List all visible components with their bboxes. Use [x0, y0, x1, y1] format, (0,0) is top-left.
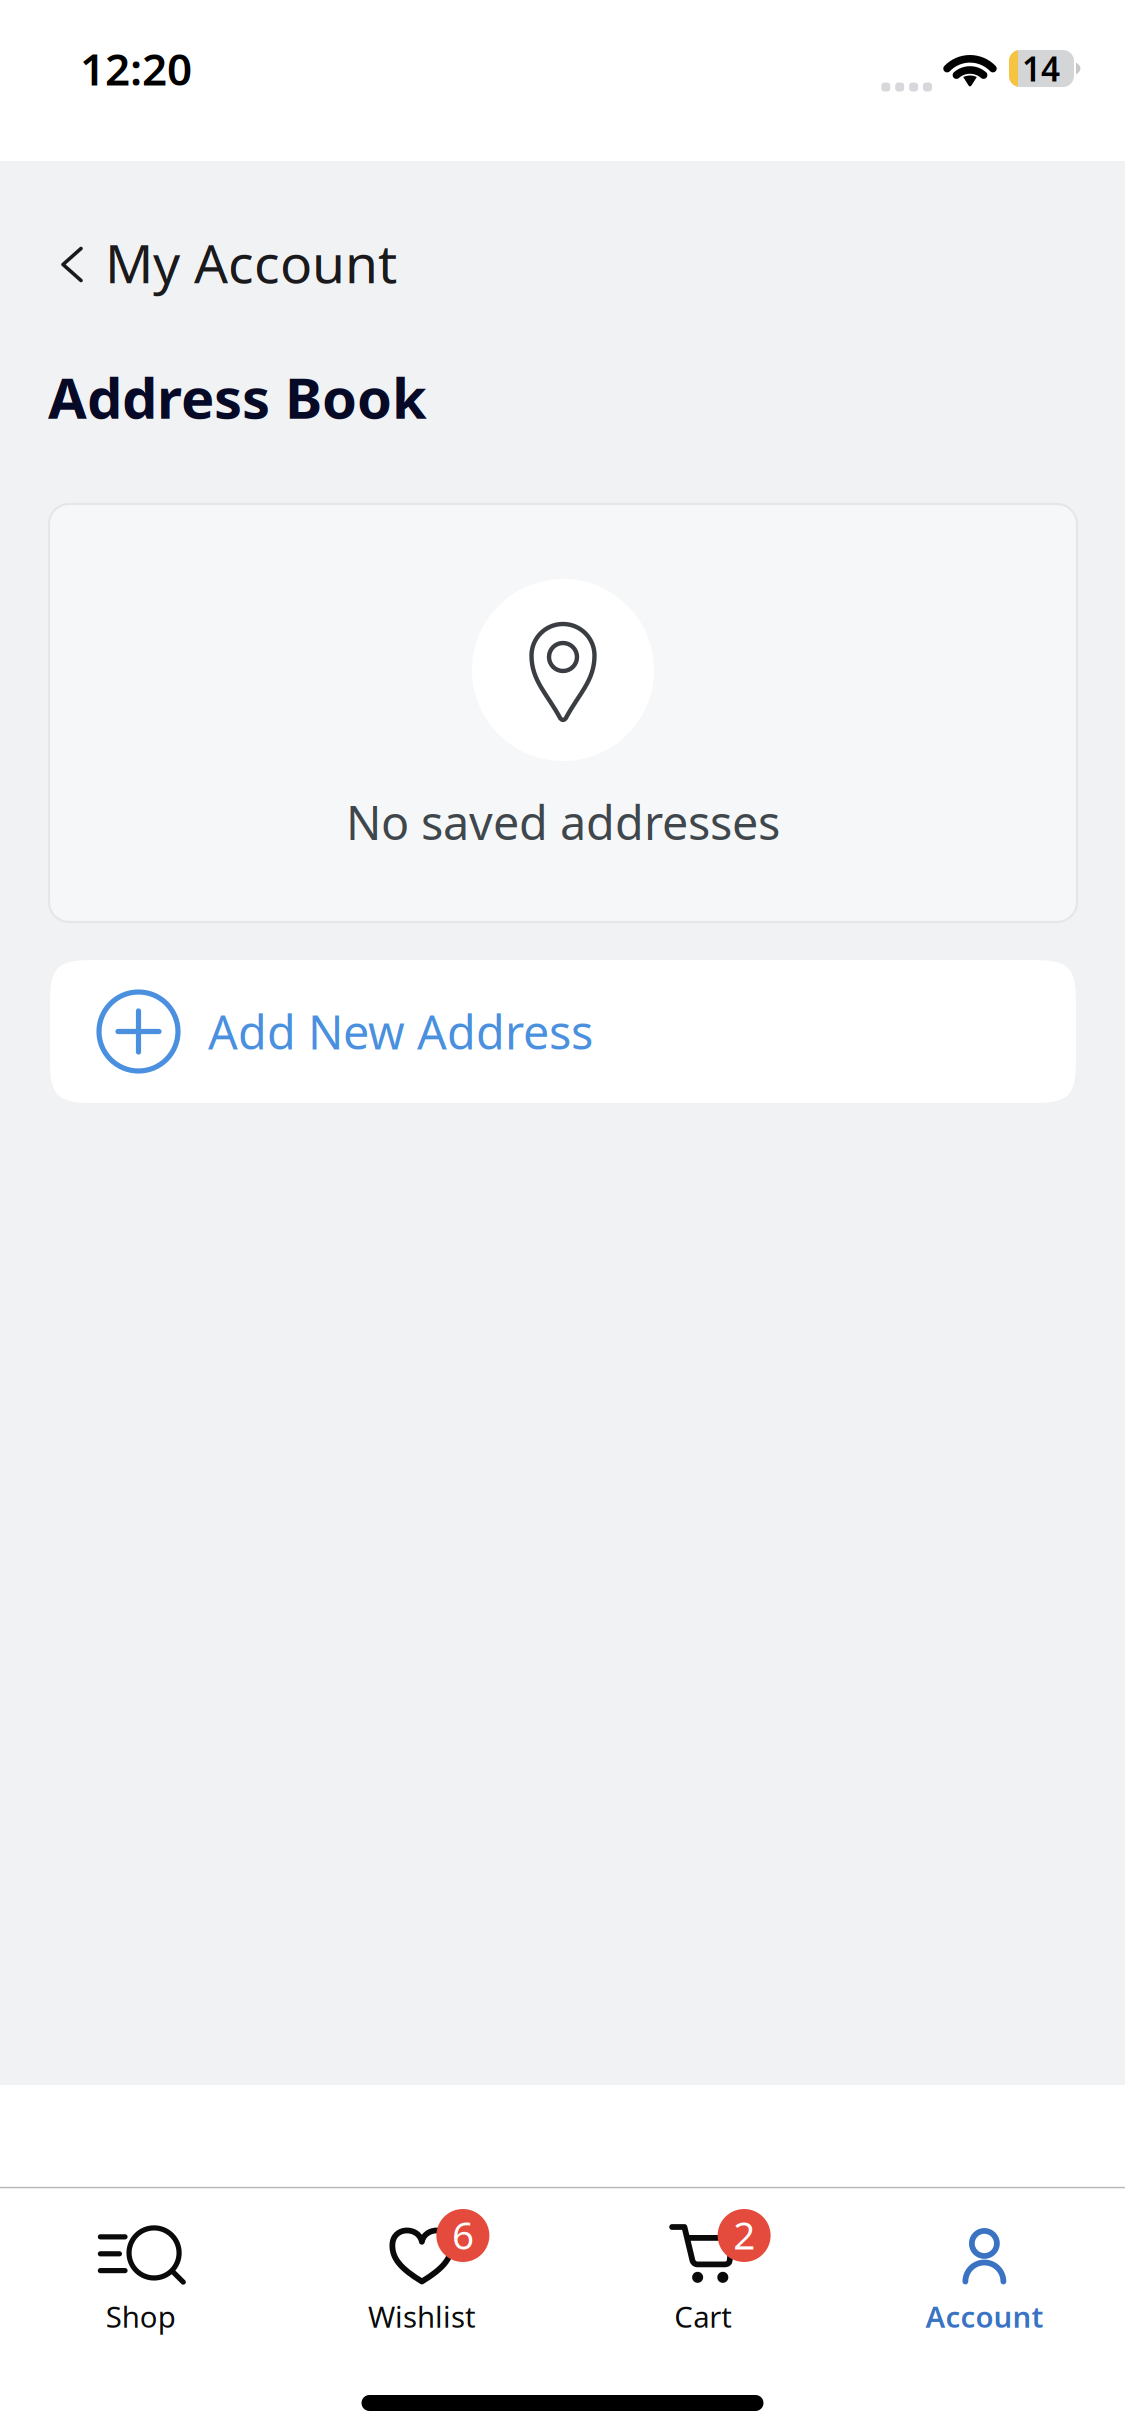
staticText: Wishlist: [368, 2297, 476, 2336]
staticText: Cart: [674, 2297, 732, 2336]
button[interactable]: 6: [281, 2217, 562, 2336]
staticText: My Account: [105, 227, 397, 298]
button[interactable]: Add New Address: [50, 960, 1076, 1103]
staticText: Add New Address: [208, 1000, 593, 1062]
staticText: 2: [733, 2209, 755, 2260]
button[interactable]: Shop: [0, 2217, 281, 2336]
staticText: 6: [452, 2209, 474, 2260]
staticText: Address Book: [48, 360, 427, 434]
staticText: Account: [925, 2297, 1043, 2336]
staticText: 12:20: [80, 39, 192, 98]
staticText: No saved addresses: [346, 791, 780, 853]
staticText: 14: [1022, 46, 1060, 91]
button[interactable]: Account: [844, 2217, 1125, 2336]
button[interactable]: 2: [562, 2217, 844, 2336]
staticText: Shop: [106, 2297, 176, 2336]
button[interactable]: My Account: [0, 210, 1125, 315]
